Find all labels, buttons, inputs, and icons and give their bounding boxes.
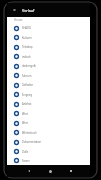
button[interactable]: Anlehat [7,99,90,109]
staticText: Sonne [22,159,30,163]
staticText: indisch [22,55,31,59]
staticText: fulcrum [22,74,32,78]
staticText: Dokumentation [22,140,42,144]
staticText: Teleskop [22,45,33,49]
staticText: SHADO [22,26,31,30]
button[interactable]: Wörterbuch [7,128,90,137]
button[interactable]: indisch [7,52,90,61]
button[interactable]: Recent apps [65,165,77,177]
staticText: Anlehat [22,102,32,106]
staticText: Erzgeng [22,93,32,97]
button[interactable]: Wort [7,109,90,118]
button[interactable]: Teleskop [7,42,90,52]
staticText: Wort [22,121,28,125]
staticText: Dolle [22,150,29,154]
staticText: Wörterbuch [22,131,37,135]
button[interactable]: Back [23,165,35,177]
button[interactable]: Home [44,165,56,177]
button[interactable]: darkengelb [7,61,90,71]
button[interactable]: Dokumentation [7,137,90,147]
button[interactable]: Dolle [7,147,90,156]
button[interactable]: Back [10,3,19,17]
button[interactable]: Erzgeng [7,90,90,99]
button[interactable]: Kulturin [7,33,90,42]
staticText: Verlauf [22,8,35,13]
button[interactable]: SHADO [7,23,90,33]
button[interactable]: Sonne [7,156,90,165]
staticText: darkengelb [22,64,36,68]
staticText: Gefladen [22,83,34,87]
button[interactable]: Wort [7,118,90,128]
staticText: Kulturin [22,36,32,40]
staticText: Wort [22,112,28,116]
button[interactable]: Gefladen [7,80,90,90]
staticText: Heute [14,18,23,22]
button[interactable]: fulcrum [7,71,90,80]
